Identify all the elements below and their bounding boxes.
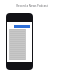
staticText: Record a News Podcast [16, 4, 48, 8]
button[interactable] [6, 13, 33, 70]
